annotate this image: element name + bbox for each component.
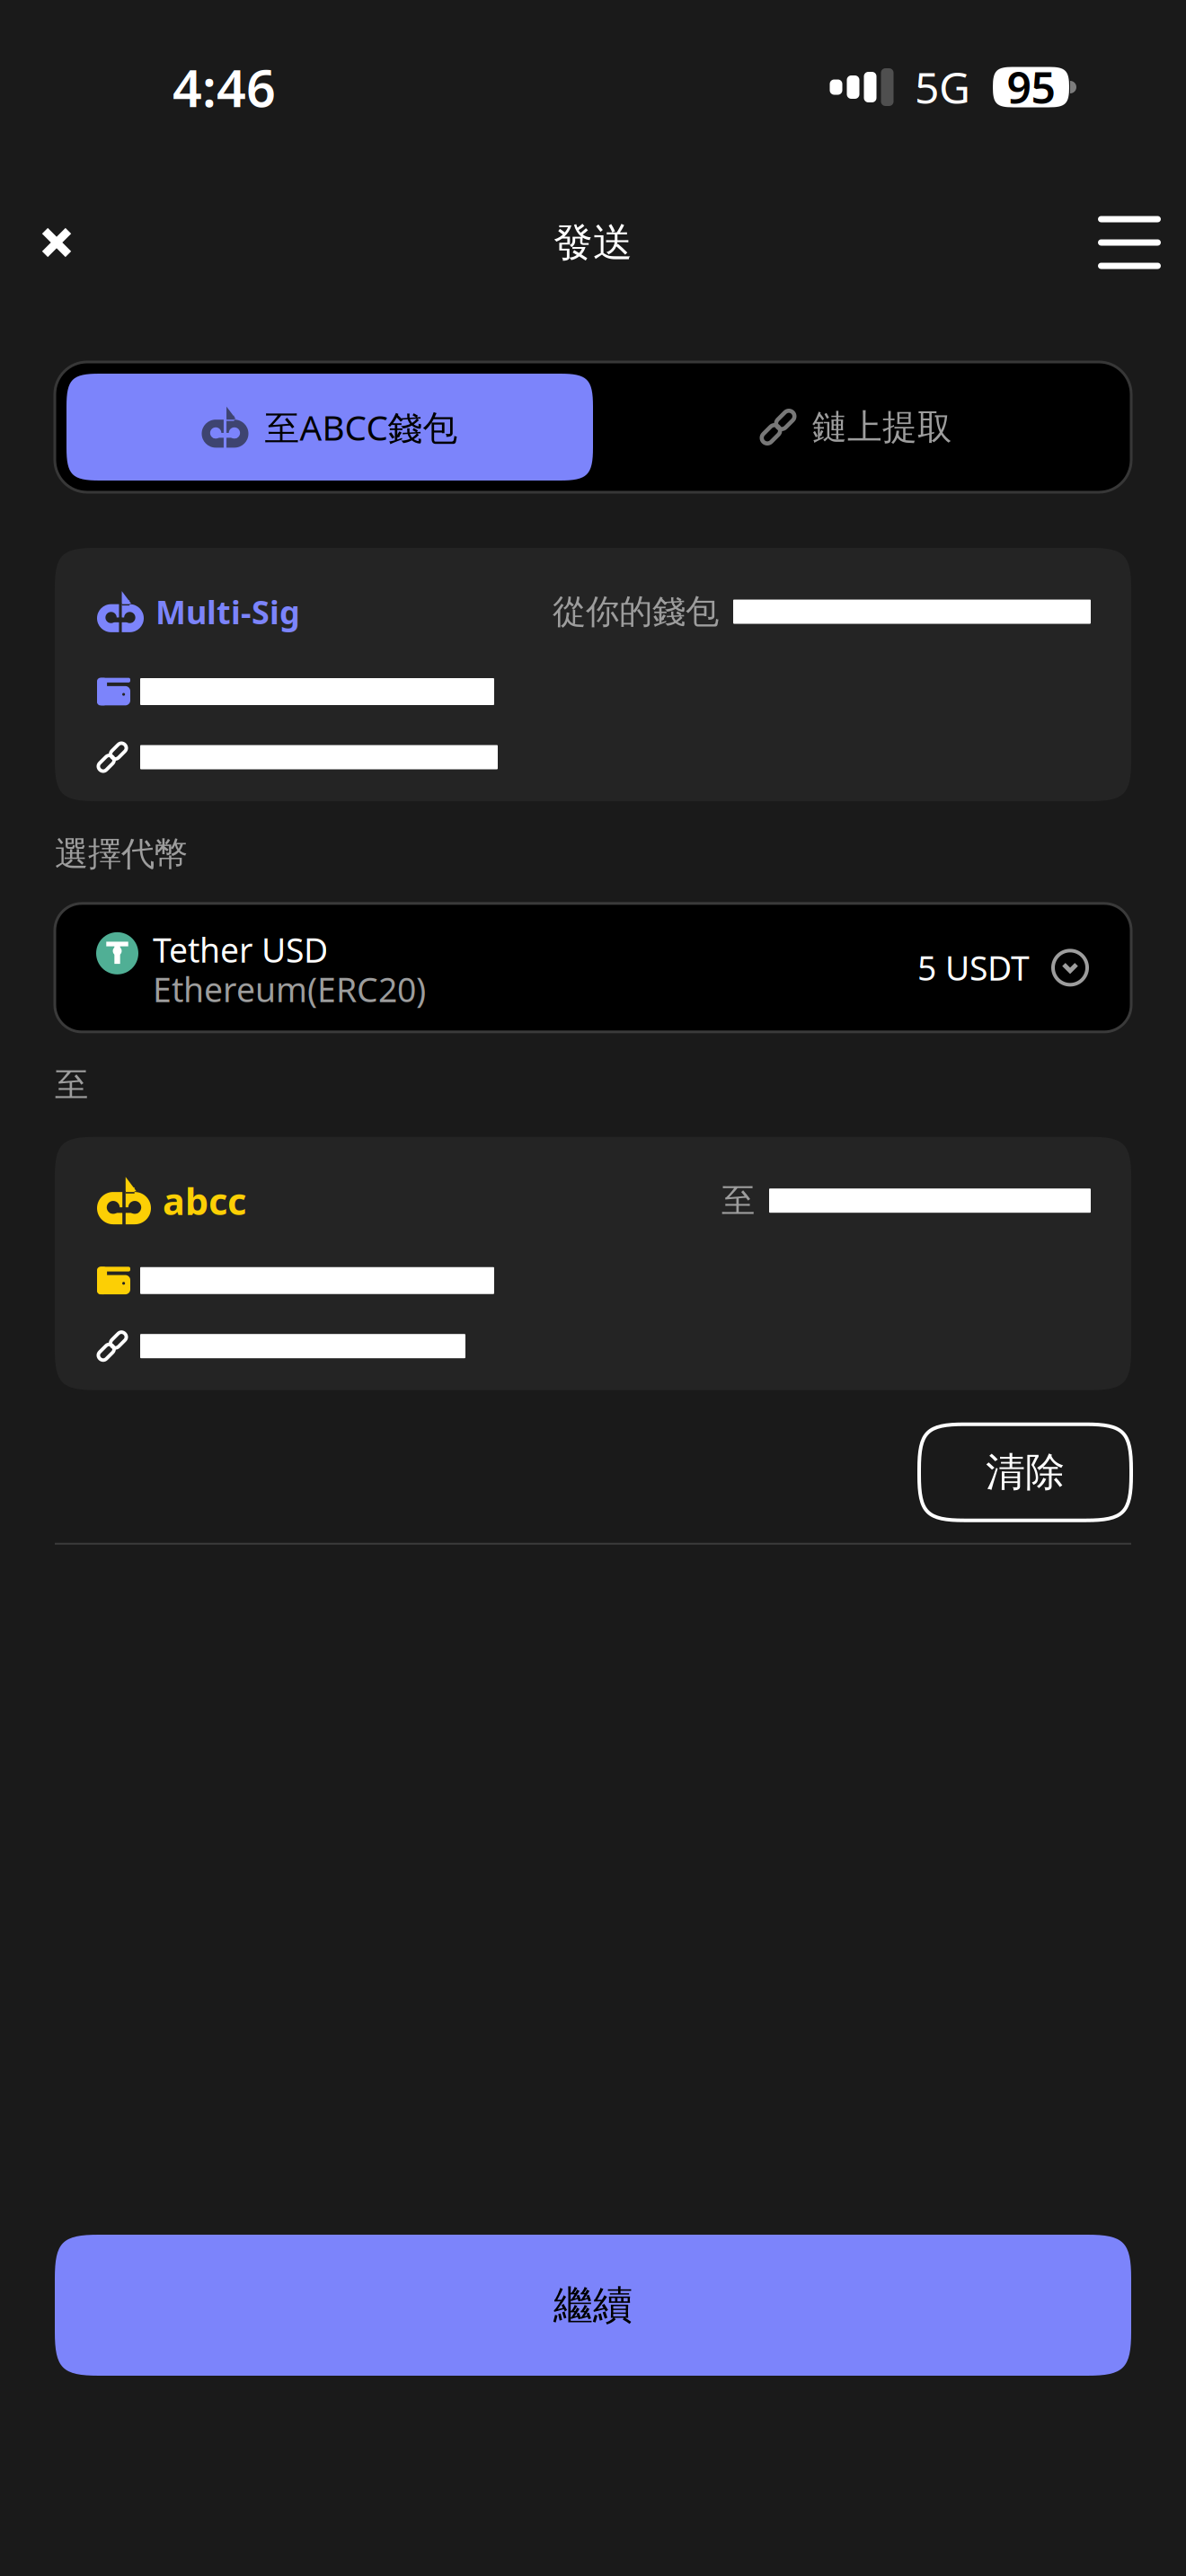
- button[interactable]: 繼續: [55, 2235, 1131, 2376]
- button[interactable]: Close: [0, 200, 99, 285]
- staticText: 從你的錢包: [553, 591, 719, 632]
- staticText: 發送: [553, 218, 633, 267]
- staticText: 至: [721, 1180, 755, 1221]
- button[interactable]: 鏈上提取: [593, 374, 1120, 481]
- staticText: 至ABCC錢包: [265, 404, 458, 450]
- staticText: 至: [55, 1064, 88, 1105]
- staticText: 5 USDT: [917, 945, 1030, 990]
- staticText: 繼續: [553, 2281, 633, 2329]
- staticText: 4:46: [173, 53, 276, 121]
- staticText: Ethereum(ERC20): [153, 967, 426, 1011]
- staticText: abcc: [163, 1176, 246, 1225]
- button[interactable]: 清除: [919, 1424, 1131, 1520]
- staticText: 5G: [915, 58, 970, 116]
- staticText: 選擇代幣: [55, 834, 188, 875]
- button[interactable]: 至ABCC錢包: [66, 374, 593, 481]
- button[interactable]: Menu: [1071, 191, 1186, 294]
- staticText: Multi-Sig: [155, 590, 300, 633]
- staticText: 鏈上提取: [812, 406, 952, 448]
- staticText: 清除: [986, 1448, 1065, 1497]
- staticText: Tether USD: [153, 927, 328, 972]
- button[interactable]: Tether USD: [55, 903, 1131, 1032]
- staticText: 95: [1007, 58, 1055, 116]
